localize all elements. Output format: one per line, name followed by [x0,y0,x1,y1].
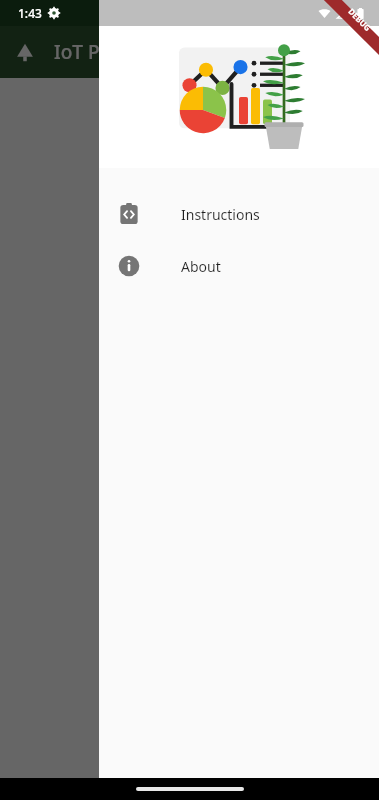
staticText: IoT Plant Monitor [54,39,213,65]
staticText: DEBUG [346,6,374,33]
staticText: Instructions [181,205,260,224]
button[interactable]: About [99,240,379,292]
staticText: About [181,257,221,276]
button[interactable]: Instructions [99,188,379,240]
staticText: 1:43 [18,5,42,21]
